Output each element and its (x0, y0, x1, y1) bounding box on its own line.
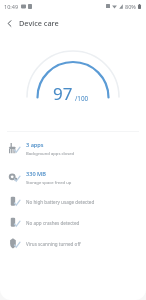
button[interactable]: No app crashes detected (0, 212, 146, 233)
staticText: No app crashes detected (26, 220, 80, 226)
staticText: /100 (75, 94, 89, 103)
button[interactable]: 3 apps (0, 134, 146, 163)
staticText: Background apps closed (26, 151, 75, 157)
staticText: No high battery usage detected (26, 199, 95, 205)
staticText: Storage space freed up (26, 180, 72, 186)
staticText: 330 MB (26, 170, 46, 178)
staticText: Virus scanning turned off (26, 241, 81, 247)
button[interactable]: Back (0, 14, 18, 32)
button[interactable]: No high battery usage detected (0, 191, 146, 212)
staticText: 3 apps (26, 141, 44, 149)
staticText: 80% (125, 3, 136, 10)
button[interactable]: 330 MB (0, 163, 146, 192)
staticText: 97 (53, 82, 73, 105)
button[interactable]: Virus scanning turned off (0, 233, 146, 254)
staticText: Device care (19, 18, 59, 28)
staticText: 10:49 (4, 3, 19, 10)
